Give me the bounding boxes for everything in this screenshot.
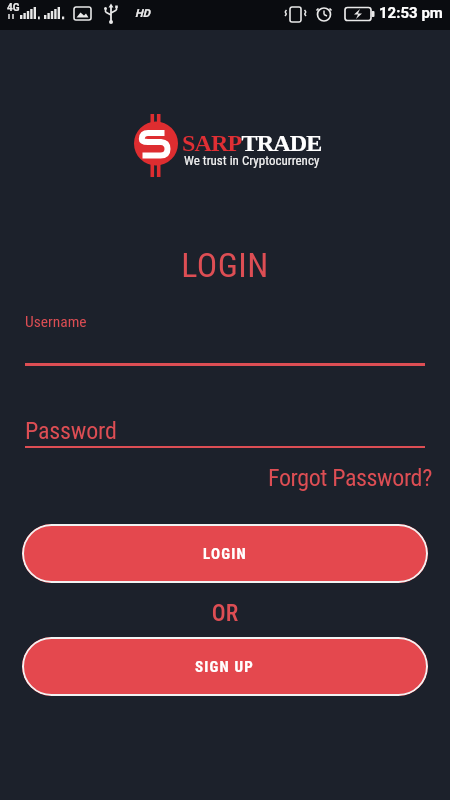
staticText: SARPTRADE	[182, 130, 322, 157]
staticText: SIGN UP	[195, 658, 255, 676]
button[interactable]: LOGIN	[22, 524, 428, 583]
staticText: Password	[25, 417, 117, 445]
staticText: HD	[135, 7, 150, 20]
staticText: Username	[25, 313, 87, 331]
staticText: We trust in Cryptocurrency	[184, 153, 320, 168]
staticText: LOGIN	[203, 545, 247, 563]
staticText: LOGIN	[0, 245, 450, 285]
staticText: 12:53 pm	[379, 4, 443, 22]
staticText: OR	[0, 600, 450, 627]
staticText: 4G	[7, 2, 20, 14]
button[interactable]: Forgot Password?	[268, 464, 432, 492]
button[interactable]: SIGN UP	[22, 637, 428, 696]
